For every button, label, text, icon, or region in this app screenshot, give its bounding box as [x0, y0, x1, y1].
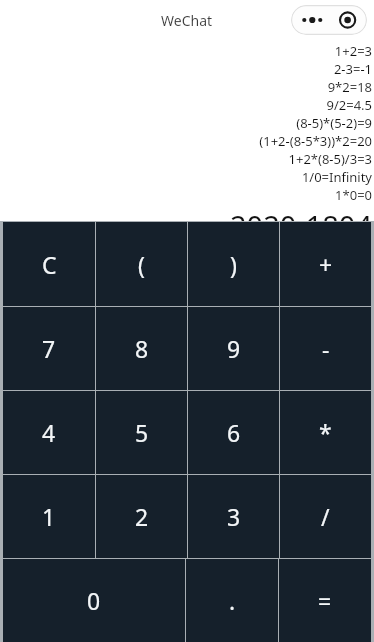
button[interactable]: 6 — [188, 391, 279, 474]
staticText: 3 — [227, 501, 241, 532]
button[interactable]: ( — [96, 222, 187, 306]
staticText: 8 — [135, 333, 149, 364]
staticText: 2-3=-1 — [333, 60, 372, 78]
staticText: * — [319, 417, 332, 448]
button[interactable]: 7 — [3, 307, 95, 390]
staticText: 5 — [135, 417, 149, 448]
staticText: 4 — [42, 417, 56, 448]
staticText: 1 — [42, 501, 56, 532]
staticText: / — [321, 501, 330, 532]
staticText: 0 — [87, 585, 101, 616]
button[interactable]: = — [279, 559, 371, 642]
staticText: WeChat — [161, 11, 213, 30]
staticText: = — [318, 585, 332, 616]
staticText: - — [322, 333, 330, 364]
staticText: 1+2=3 — [334, 42, 372, 60]
button[interactable]: 8 — [96, 307, 187, 390]
button[interactable]: / — [280, 475, 371, 558]
button[interactable]: Mini program menu and close — [291, 5, 367, 35]
staticText: ) — [230, 249, 237, 280]
button[interactable]: C — [3, 222, 95, 306]
button[interactable]: - — [280, 307, 371, 390]
staticText: ( — [138, 249, 145, 280]
button[interactable]: ) — [188, 222, 279, 306]
staticText: (1+2-(8-5*3))*2=20 — [259, 132, 372, 150]
button[interactable]: 2 — [96, 475, 187, 558]
button[interactable]: 9 — [188, 307, 279, 390]
staticText: C — [42, 249, 57, 280]
staticText: (8-5)*(5-2)=9 — [296, 114, 372, 132]
staticText: 6 — [227, 417, 241, 448]
staticText: 7 — [42, 333, 56, 364]
staticText: 2 — [135, 501, 149, 532]
button[interactable]: 4 — [3, 391, 95, 474]
button[interactable]: . — [186, 559, 278, 642]
staticText: 9*2=18 — [327, 78, 372, 96]
staticText: 1/0=Infinity — [301, 168, 372, 186]
staticText: 9 — [227, 333, 241, 364]
staticText: 2020-1804 — [229, 206, 372, 221]
button[interactable]: * — [280, 391, 371, 474]
button[interactable]: 5 — [96, 391, 187, 474]
staticText: 1+2*(8-5)/3=3 — [288, 150, 372, 168]
button[interactable]: 0 — [3, 559, 185, 642]
staticText: 1*0=0 — [335, 186, 372, 204]
staticText: . — [229, 585, 236, 616]
staticText: + — [319, 249, 333, 280]
button[interactable]: 1 — [3, 475, 95, 558]
staticText: 9/2=4.5 — [326, 96, 372, 114]
button[interactable]: 3 — [188, 475, 279, 558]
button[interactable]: + — [280, 222, 371, 306]
